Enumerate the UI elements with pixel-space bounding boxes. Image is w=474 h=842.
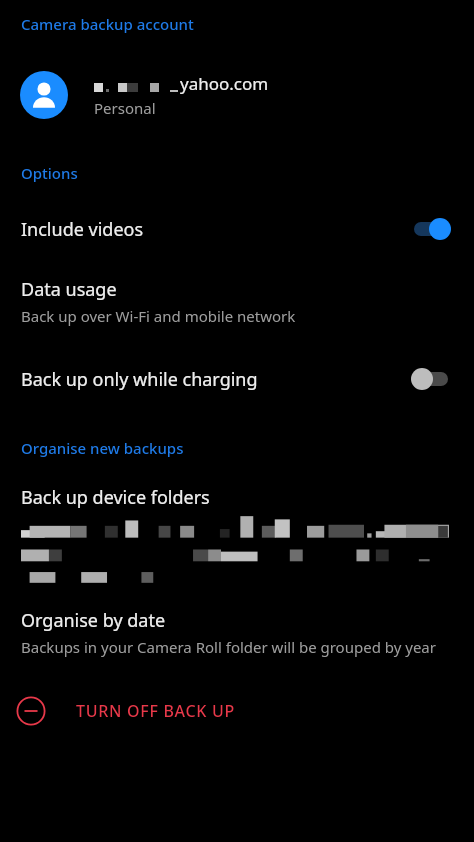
- button[interactable]: yahoo.com: [0, 67, 474, 123]
- staticText: Camera backup account: [21, 14, 194, 34]
- button[interactable]: Back up only while charging toggle: [400, 359, 462, 399]
- button[interactable]: Back up only while charging: [0, 359, 474, 399]
- button[interactable]: Back up device folders: [0, 485, 474, 578]
- staticText: Backups in your Camera Roll folder will …: [21, 637, 436, 657]
- button[interactable]: Data usage: [0, 277, 474, 326]
- staticText: Include videos: [21, 217, 400, 242]
- button[interactable]: Include videos: [0, 209, 474, 249]
- staticText: Back up only while charging: [21, 367, 400, 392]
- staticText: Data usage: [21, 277, 117, 302]
- staticText: yahoo.com: [180, 72, 269, 95]
- staticText: TURN OFF BACK UP: [76, 700, 235, 722]
- button[interactable]: Include videos toggle: [400, 209, 462, 249]
- staticText: Back up device folders: [21, 485, 210, 510]
- staticText: Personal: [94, 98, 156, 118]
- button[interactable]: Organise by date: [0, 608, 474, 657]
- staticText: Back up over Wi-Fi and mobile network: [21, 306, 296, 326]
- staticText: Options: [21, 163, 78, 183]
- staticText: Organise new backups: [21, 438, 184, 458]
- staticText: Organise by date: [21, 608, 166, 633]
- button[interactable]: TURN OFF BACK UP: [0, 690, 474, 732]
